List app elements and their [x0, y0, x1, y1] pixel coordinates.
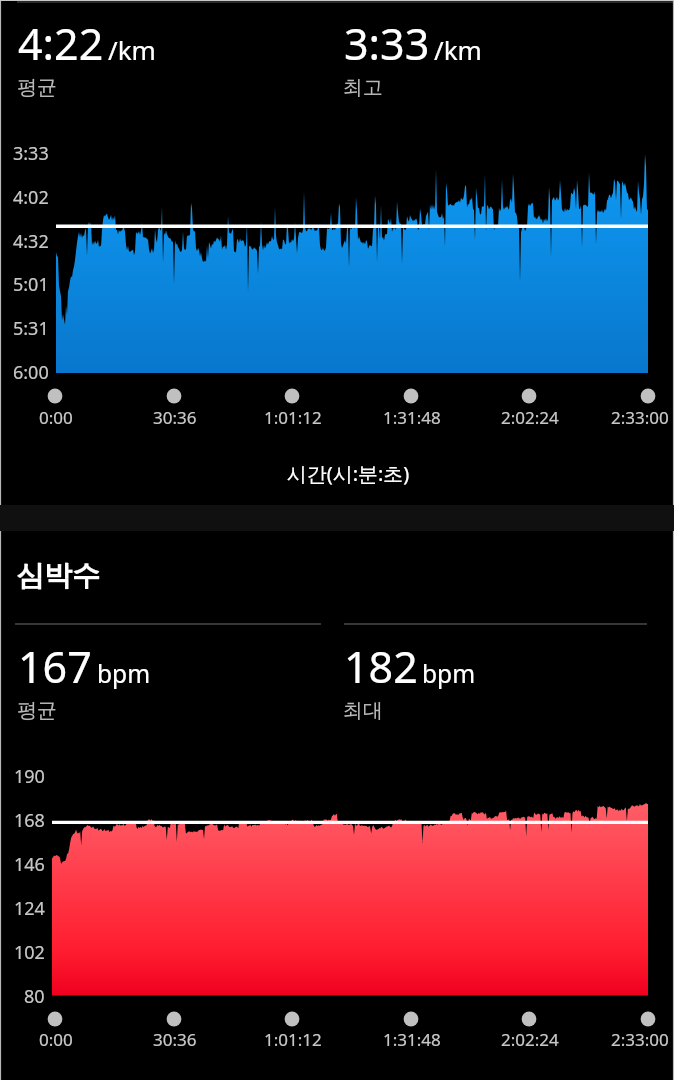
staticText: 최대 [343, 698, 383, 723]
staticText: 1:31:48 [383, 1028, 441, 1051]
staticText: 5:31 [13, 316, 49, 341]
button[interactable]: 평균 167 bpm [14, 644, 314, 730]
staticText: /km [108, 32, 156, 67]
staticText: 2:02:24 [501, 406, 559, 429]
staticText: /km [434, 32, 482, 67]
staticText: 평균 [17, 698, 57, 723]
staticText: 평균 [17, 75, 57, 100]
staticText: 190 [14, 764, 45, 789]
staticText: 최고 [343, 75, 383, 100]
staticText: 3:33 [13, 141, 49, 166]
other: Pace over time chart [0, 0, 674, 1080]
staticText: 2:33:00 [611, 1028, 669, 1051]
staticText: 146 [14, 852, 45, 877]
button[interactable]: 최대 182 bpm [340, 644, 640, 730]
button[interactable]: Time marker 2:02:24 [518, 1008, 540, 1030]
button[interactable]: Time marker 2:33:00 [637, 385, 659, 407]
staticText: 3:33 [344, 14, 430, 73]
staticText: 1:01:12 [264, 406, 322, 429]
button[interactable]: Time marker 1:01:12 [281, 385, 303, 407]
staticText: bpm [422, 657, 476, 690]
staticText: 102 [14, 940, 45, 965]
staticText: 4:32 [13, 229, 49, 254]
button[interactable]: Time marker 2:02:24 [518, 385, 540, 407]
staticText: 30:36 [153, 406, 197, 429]
staticText: 80 [24, 984, 45, 1009]
button[interactable]: Time marker 2:33:00 [637, 1008, 659, 1030]
staticText: 182 [344, 637, 418, 696]
staticText: 심박수 [16, 558, 100, 593]
staticText: 1:31:48 [383, 406, 441, 429]
staticText: 시간(시:분:초) [48, 460, 648, 487]
staticText: 5:01 [13, 272, 49, 297]
staticText: 0:00 [39, 406, 73, 429]
staticText: 30:36 [153, 1028, 197, 1051]
button[interactable]: 최고 3:33 /km [340, 21, 640, 107]
button[interactable]: Time marker 0:00 [44, 385, 66, 407]
staticText: 2:33:00 [611, 406, 669, 429]
staticText: bpm [97, 657, 151, 690]
other: Heart rate over time chart [0, 0, 674, 1080]
staticText: 1:01:12 [264, 1028, 322, 1051]
staticText: 4:02 [13, 185, 49, 210]
button[interactable]: Time marker 1:31:48 [400, 1008, 422, 1030]
staticText: 6:00 [13, 360, 49, 385]
staticText: 168 [14, 808, 45, 833]
staticText: 2:02:24 [501, 1028, 559, 1051]
button[interactable]: Time marker 1:31:48 [400, 385, 422, 407]
button[interactable]: Time marker 1:01:12 [281, 1008, 303, 1030]
button[interactable]: 평균 4:22 /km [14, 21, 314, 107]
staticText: 0:00 [39, 1028, 73, 1051]
button[interactable]: Time marker 0:00 [44, 1008, 66, 1030]
staticText: 124 [14, 896, 45, 921]
button[interactable]: Time marker 30:36 [163, 385, 185, 407]
staticText: 4:22 [18, 14, 104, 73]
staticText: 167 [18, 637, 92, 696]
button[interactable]: Time marker 30:36 [163, 1008, 185, 1030]
